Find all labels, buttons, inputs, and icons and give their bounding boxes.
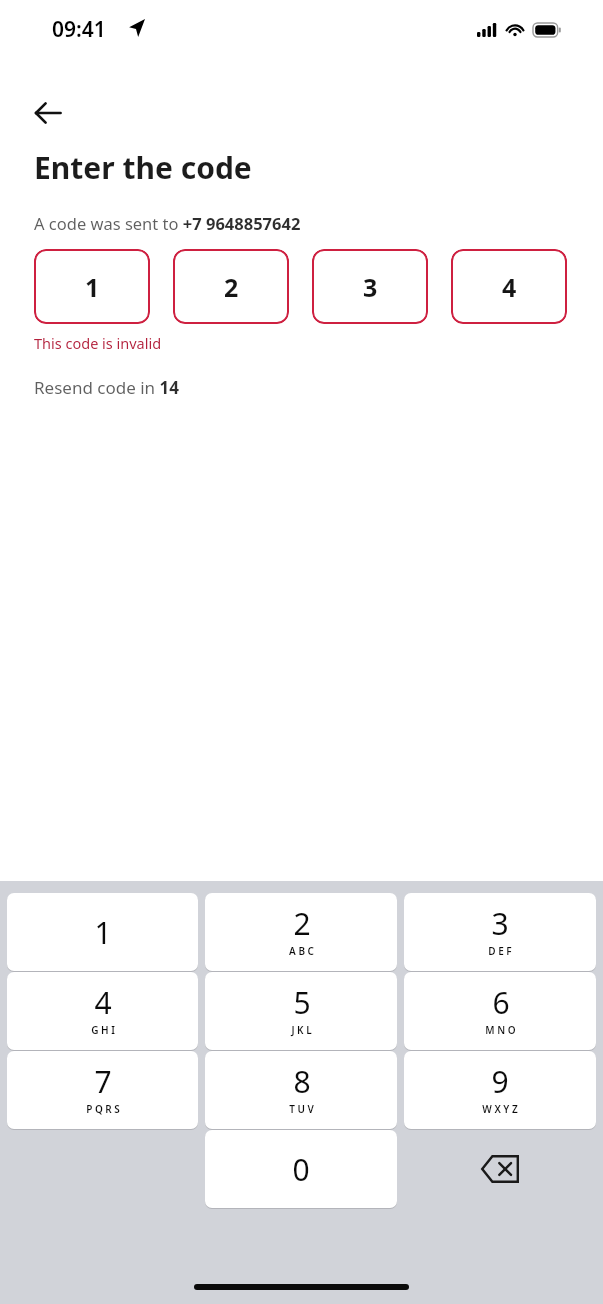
staticText: W X Y Z [482,1102,518,1116]
staticText: 2 [293,903,311,944]
staticText: Enter the code [34,147,252,188]
button[interactable]: Back [20,85,76,141]
staticText: 0 [292,1149,310,1190]
button[interactable]: 4 [451,249,567,324]
staticText: 9 [491,1061,509,1102]
staticText: M N O [485,1023,516,1037]
button[interactable]: 2 [205,893,397,971]
button[interactable]: 1 [34,249,150,324]
button[interactable]: Backspace [404,1130,596,1208]
staticText: A code was sent to +7 9648857642 [34,212,301,234]
button[interactable]: 7 [7,1051,198,1129]
button[interactable]: 4 [7,972,198,1050]
button[interactable]: 2 [173,249,289,324]
staticText: 7 [94,1061,112,1102]
button[interactable]: 8 [205,1051,397,1129]
staticText: 1 [85,270,100,304]
button[interactable]: 1 [7,893,198,971]
staticText: 3 [363,270,378,304]
staticText: 5 [293,982,311,1023]
staticText: A B C [289,944,314,958]
staticText: 3 [491,903,509,944]
staticText: G H I [91,1023,115,1037]
button[interactable]: 5 [205,972,397,1050]
staticText: 2 [224,270,239,304]
staticText: D E F [488,944,512,958]
button[interactable]: 3 [312,249,428,324]
button[interactable]: 9 [404,1051,596,1129]
staticText: 8 [293,1061,311,1102]
staticText: Resend code in 14 [34,376,179,399]
button[interactable]: 3 [404,893,596,971]
staticText: 1 [94,912,112,953]
staticText: 4 [502,270,517,304]
staticText: 09:41 [52,15,106,44]
staticText: P Q R S [86,1102,120,1116]
staticText: 6 [492,982,510,1023]
staticText: T U V [289,1102,314,1116]
staticText: This code is invalid [34,333,162,353]
staticText: J K L [291,1023,312,1037]
staticText: 4 [94,982,112,1023]
button[interactable]: 0 [205,1130,397,1208]
button[interactable]: 6 [404,972,596,1050]
